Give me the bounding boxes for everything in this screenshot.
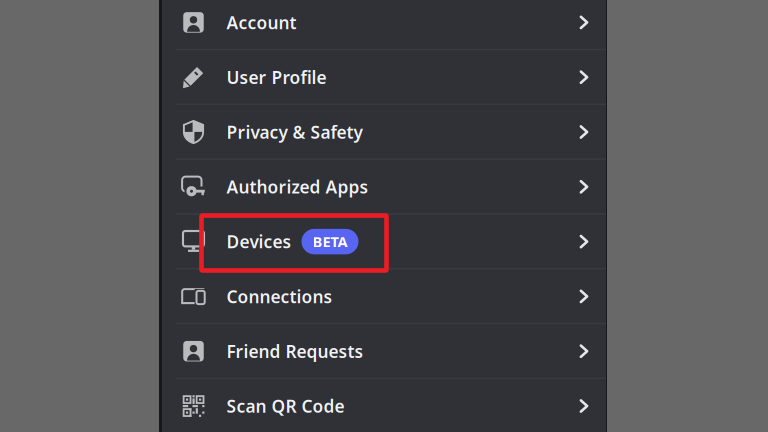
staticText: User Profile <box>226 66 326 89</box>
staticText: Authorized Apps <box>226 175 368 198</box>
button[interactable]: Connections <box>162 269 606 324</box>
button[interactable]: Devices <box>162 214 606 269</box>
button[interactable]: Authorized Apps <box>162 159 606 214</box>
staticText: Account <box>226 11 296 34</box>
button[interactable]: User Profile <box>162 50 606 105</box>
staticText: Privacy & Safety <box>226 120 362 143</box>
staticText: Devices <box>226 230 291 253</box>
button[interactable]: Scan QR Code <box>162 379 606 432</box>
staticText: Scan QR Code <box>226 394 344 417</box>
button[interactable]: Friend Requests <box>162 324 606 379</box>
staticText: BETA <box>312 232 347 251</box>
staticText: Connections <box>226 285 332 308</box>
button[interactable]: Privacy & Safety <box>162 105 606 159</box>
button[interactable]: Account <box>162 0 606 50</box>
staticText: Friend Requests <box>226 340 363 363</box>
